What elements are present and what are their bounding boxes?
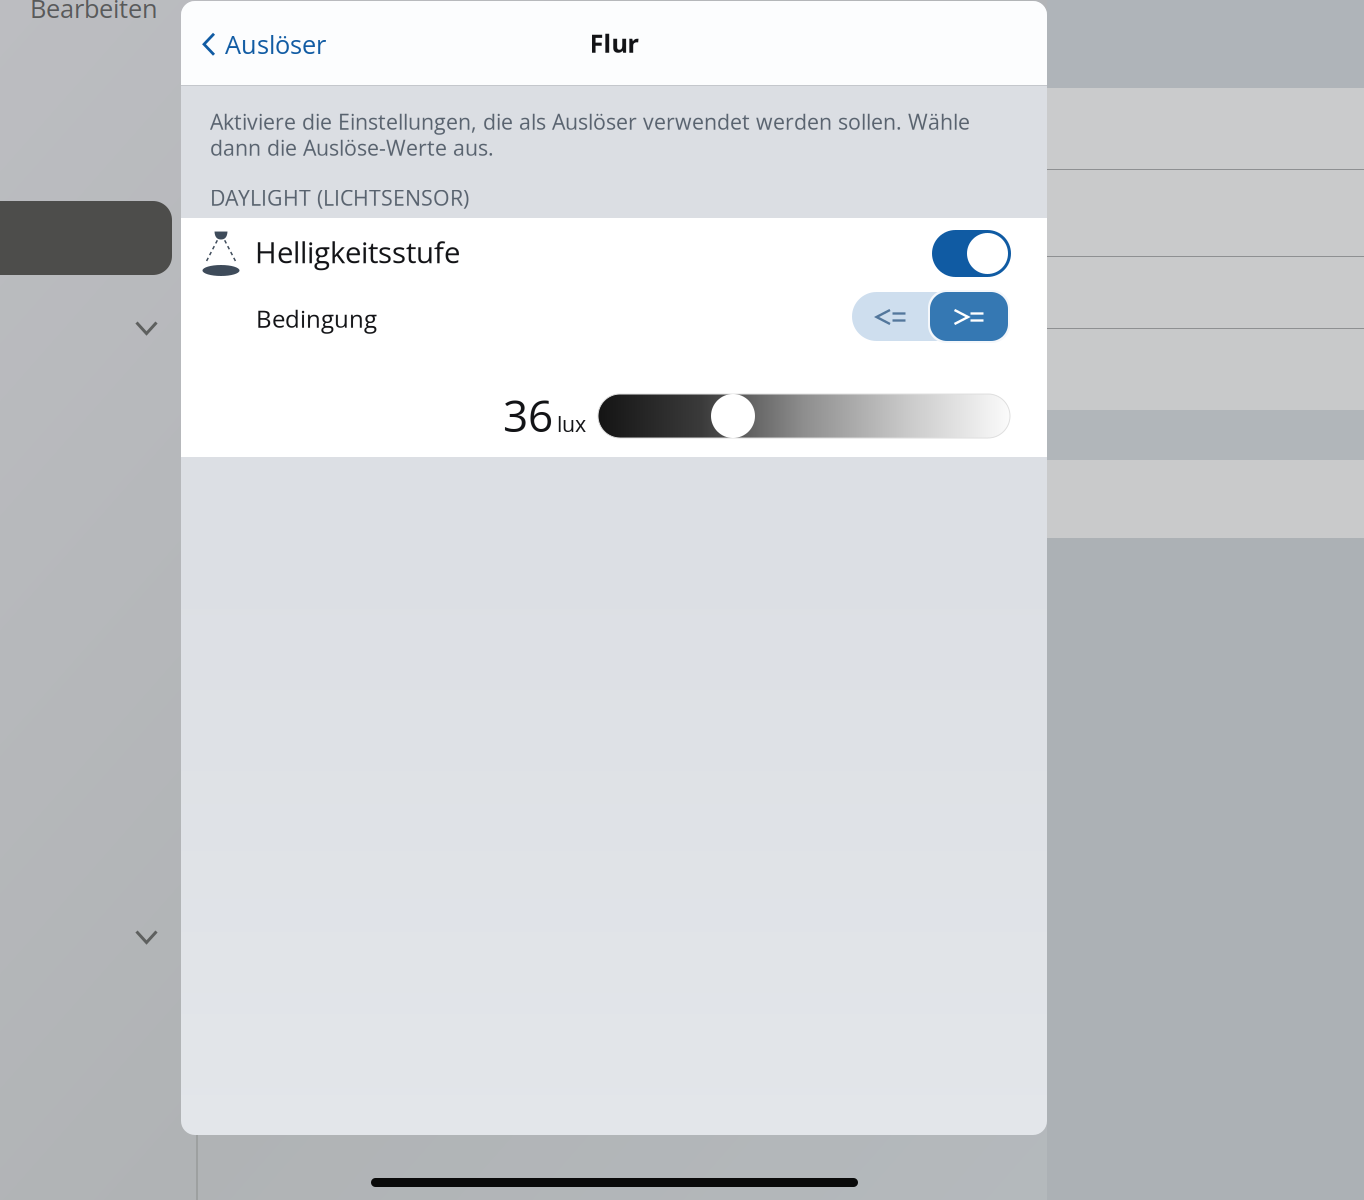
button[interactable]: Gruppe einklappen <box>135 321 158 335</box>
button[interactable]: Bearbeiten <box>30 0 158 25</box>
button[interactable]: Helligkeitsstufe einschalten <box>932 230 1011 277</box>
button[interactable]: Gruppe einklappen <box>135 930 158 944</box>
staticText: lux <box>557 409 586 438</box>
staticText: Aktiviere die Einstellungen, die als Aus… <box>210 107 970 136</box>
button[interactable]: Größer oder gleich <box>930 292 1008 341</box>
staticText: Bedingung <box>256 302 377 335</box>
staticText: 36 <box>503 385 553 445</box>
staticText: Helligkeitsstufe <box>255 232 460 272</box>
staticText: Auslöser <box>225 27 326 61</box>
staticText: dann die Auslöse-Werte aus. <box>210 133 494 162</box>
button[interactable]: Kleiner oder gleich <box>852 292 930 341</box>
staticText: Bearbeiten <box>30 0 158 25</box>
button[interactable]: Helligkeit 36 lux <box>598 394 1010 438</box>
button[interactable]: Auslöser <box>188 12 340 76</box>
staticText: DAYLIGHT (LICHTSENSOR) <box>210 183 469 212</box>
staticText: Flur <box>589 26 638 60</box>
